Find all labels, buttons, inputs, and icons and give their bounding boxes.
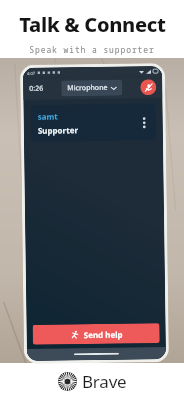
staticText: samt (38, 110, 59, 122)
button[interactable]: Mute microphone (140, 79, 156, 95)
staticText: Supporter (38, 124, 79, 136)
button[interactable]: Send help (32, 323, 160, 345)
staticText: Send help (84, 329, 123, 340)
button[interactable]: Brave (0, 363, 184, 400)
staticText: Speak with a supporter (29, 44, 155, 55)
staticText: Brave (82, 370, 127, 393)
staticText: Microphone (67, 83, 108, 93)
button[interactable]: More options (139, 114, 149, 130)
staticText: Talk & Connect (19, 11, 166, 38)
button[interactable]: samt (30, 103, 156, 142)
staticText: 4:07 (27, 71, 35, 76)
button[interactable]: Microphone (61, 80, 122, 96)
staticText: 0:26 (29, 84, 43, 94)
